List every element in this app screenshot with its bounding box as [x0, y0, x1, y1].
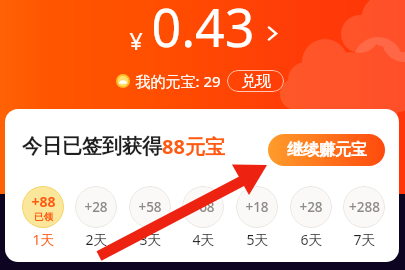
staticText: 我的元宝: 29: [135, 71, 221, 91]
button[interactable]: +28: [70, 186, 122, 249]
staticText: 3天: [139, 230, 162, 249]
button[interactable]: +18: [231, 186, 283, 249]
staticText: 0.43: [151, 0, 255, 62]
other: More: [266, 24, 279, 43]
staticText: 继续赚元宝: [287, 140, 367, 160]
staticText: 4天: [192, 230, 215, 249]
staticText: +18: [245, 198, 269, 216]
staticText: 88元宝: [162, 133, 225, 160]
staticText: +288: [349, 198, 380, 216]
button[interactable]: +28: [285, 186, 337, 249]
staticText: 5天: [246, 230, 269, 249]
staticText: 1天: [32, 230, 55, 249]
staticText: 兑现: [241, 72, 271, 91]
staticText: 7天: [353, 230, 376, 249]
staticText: +28: [299, 198, 323, 216]
staticText: 2天: [85, 230, 108, 249]
button[interactable]: 兑现: [227, 70, 284, 92]
button[interactable]: +88: [17, 186, 69, 249]
staticText: +68: [191, 198, 215, 216]
staticText: +28: [84, 198, 108, 216]
staticText: 6天: [300, 230, 323, 249]
staticText: +58: [138, 198, 162, 216]
staticText: 今日已签到获得: [22, 134, 162, 159]
button[interactable]: +288: [338, 186, 390, 249]
button[interactable]: 继续赚元宝: [268, 134, 385, 166]
button[interactable]: +68: [177, 186, 229, 249]
button[interactable]: +58: [124, 186, 176, 249]
staticText: +88: [31, 192, 56, 211]
staticText: 已领: [34, 211, 53, 223]
staticText: ¥: [129, 25, 143, 56]
